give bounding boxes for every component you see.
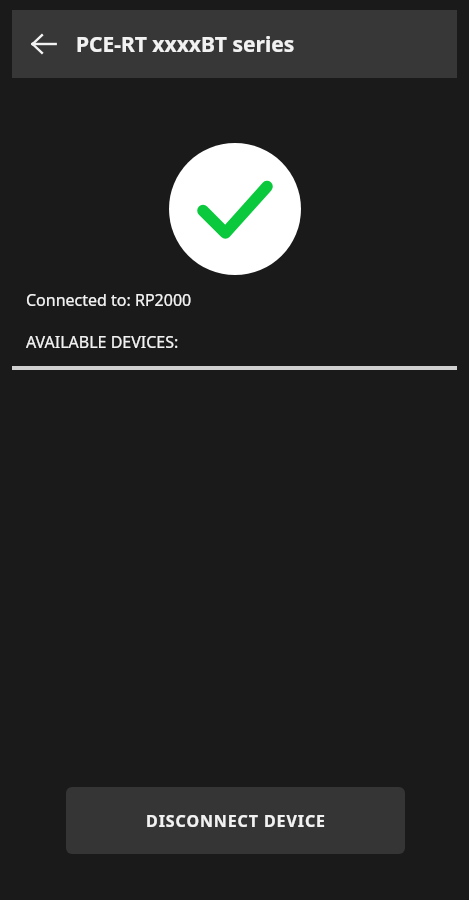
button[interactable]: DISCONNECT DEVICE (66, 787, 405, 854)
button[interactable]: Back (12, 10, 76, 78)
staticText: Connected to: RP2000 (26, 289, 192, 311)
staticText: AVAILABLE DEVICES: (26, 331, 179, 353)
staticText: PCE-RT xxxxBT series (76, 30, 295, 59)
staticText: DISCONNECT DEVICE (146, 810, 326, 832)
